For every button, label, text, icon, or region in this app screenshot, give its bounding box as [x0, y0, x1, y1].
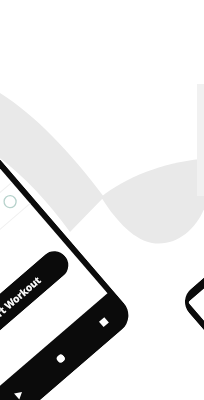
button[interactable]: Hamstring Stretch: [0, 182, 29, 303]
staticText: Start Workout: [0, 273, 44, 330]
button[interactable]: Back: [4, 379, 35, 400]
staticText: Hamstring Stretch: [0, 202, 9, 289]
button[interactable]: Side Arms: [0, 161, 12, 283]
button[interactable]: Start Workout: [0, 245, 74, 357]
button[interactable]: Home: [45, 343, 76, 374]
button[interactable]: Recent apps: [88, 306, 119, 337]
